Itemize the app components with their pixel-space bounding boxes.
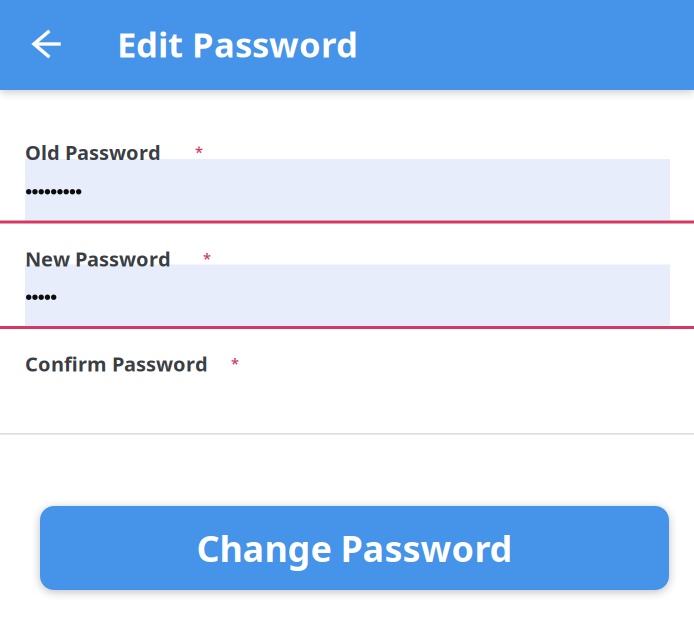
staticText: * (231, 353, 239, 373)
staticText: * (203, 248, 211, 268)
button[interactable]: Back (16, 14, 76, 74)
button[interactable]: Change Password (40, 506, 669, 590)
staticText: Old Password (25, 139, 161, 166)
button[interactable]: Old Password (0, 139, 694, 628)
staticText: Edit Password (117, 21, 358, 67)
staticText: New Password (25, 245, 171, 272)
button[interactable]: Confirm Password (0, 350, 694, 434)
staticText: Change Password (196, 524, 512, 572)
staticText: * (195, 142, 203, 161)
staticText: Confirm Password (25, 350, 208, 377)
button[interactable]: New Password (0, 245, 694, 628)
